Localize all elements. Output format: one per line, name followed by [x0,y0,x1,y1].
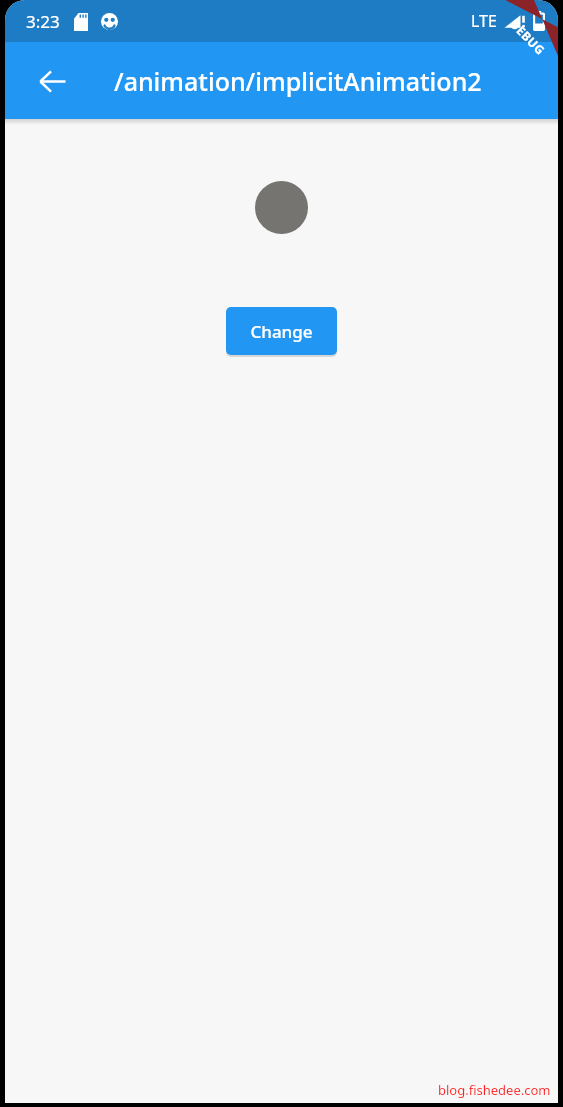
staticText: /animation/implicitAnimation2 [114,64,482,98]
button[interactable]: Back [28,57,76,105]
staticText: blog.fishedee.com [438,1081,551,1099]
staticText: DEBUG [507,16,549,58]
staticText: LTE [471,10,497,32]
button[interactable]: Change [226,307,337,355]
staticText: 3:23 [26,10,60,33]
staticText: Change [250,320,313,343]
